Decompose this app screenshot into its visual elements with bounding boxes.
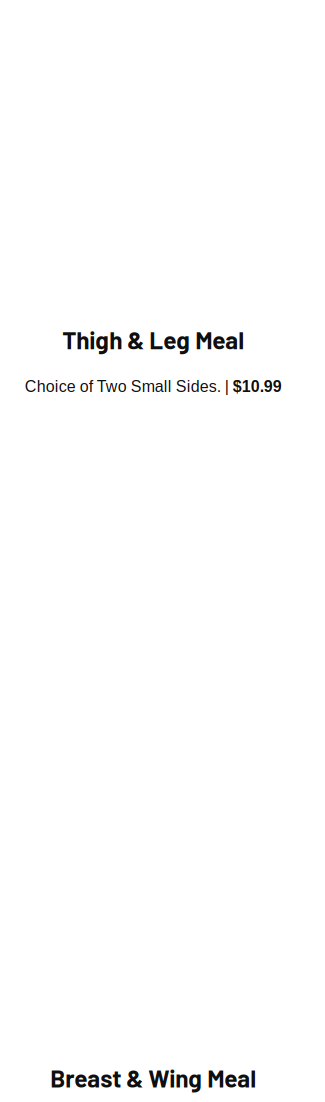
staticText: Choice of Two Small Sides. | $10.99	[25, 378, 282, 395]
staticText: Thigh & Leg Meal	[62, 325, 244, 354]
button[interactable]: Breast & Wing Meal	[0, 395, 306, 1102]
button[interactable]: Thigh & Leg Meal	[0, 0, 306, 395]
staticText: Breast & Wing Meal	[50, 1063, 256, 1092]
